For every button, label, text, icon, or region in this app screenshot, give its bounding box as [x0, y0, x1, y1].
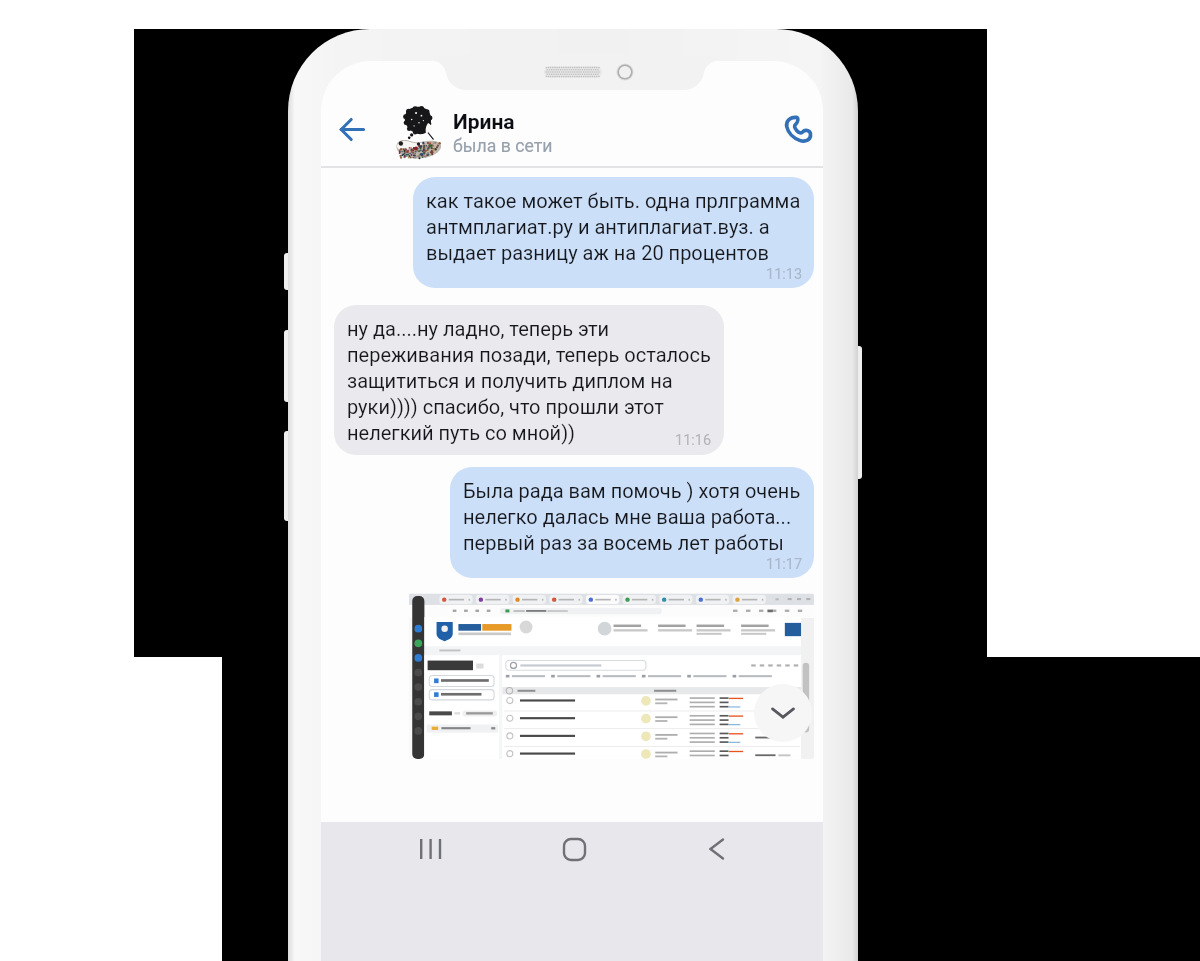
staticText: 11:13: [766, 266, 803, 283]
button[interactable]: Photo attachment: [409, 593, 814, 759]
staticText: как такое может быть. одна прлграмма ант…: [426, 189, 801, 264]
staticText: ну да....ну ладно, теперь эти переживани…: [347, 317, 711, 444]
button[interactable]: Home: [546, 821, 602, 877]
button[interactable]: Recent apps: [403, 821, 459, 877]
staticText: Была рада вам помочь ) хотя очень нелегк…: [463, 479, 801, 554]
button[interactable]: Scroll to bottom: [754, 684, 812, 742]
button[interactable]: Back: [330, 106, 376, 152]
staticText: 11:17: [766, 556, 803, 573]
staticText: 11:16: [675, 432, 712, 449]
staticText: Ирина: [453, 110, 515, 135]
button[interactable]: как такое может быть. одна прлграмма ант…: [413, 177, 814, 288]
button[interactable]: Call: [776, 107, 821, 152]
button[interactable]: ну да....ну ладно, теперь эти переживани…: [334, 305, 724, 455]
button[interactable]: Back: [688, 821, 744, 877]
button[interactable]: Была рада вам помочь ) хотя очень нелегк…: [450, 467, 814, 578]
staticText: была в сети: [453, 136, 553, 157]
